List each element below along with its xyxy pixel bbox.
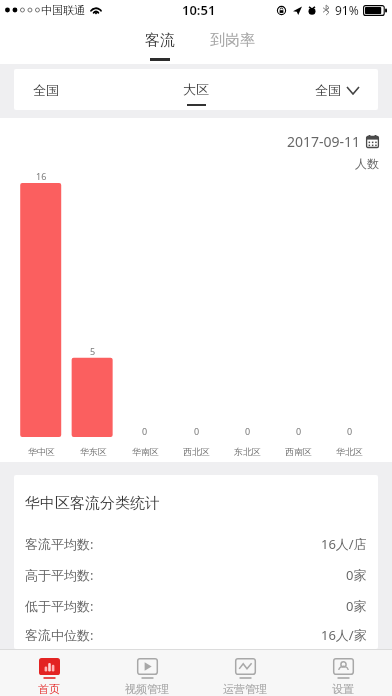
staticText: 西北区 [183, 446, 210, 457]
staticText: 首页 [38, 682, 60, 696]
staticText: 到岗率 [210, 31, 255, 50]
staticText: 5 [90, 345, 96, 357]
button[interactable]: 首页 [0, 651, 98, 696]
button[interactable]: 到岗率 [196, 20, 269, 64]
staticText: 人数 [355, 156, 379, 171]
staticText: 东北区 [234, 446, 261, 457]
staticText: 0家 [346, 566, 367, 584]
staticText: 0 [296, 425, 302, 437]
staticText: 华南区 [132, 446, 159, 457]
button[interactable]: 视频管理 [98, 651, 196, 696]
staticText: 低于平均数: [25, 597, 94, 615]
staticText: 大区 [183, 81, 209, 97]
button[interactable]: 运营管理 [196, 651, 294, 696]
staticText: 全国 [315, 82, 341, 98]
button[interactable]: 大区 [183, 81, 209, 106]
button[interactable]: 全国 [315, 82, 359, 98]
staticText: 10:51 [182, 1, 216, 19]
button[interactable]: 设置 [294, 651, 392, 696]
staticText: 华东区 [80, 446, 107, 457]
staticText: 0家 [346, 597, 367, 615]
other: Pick date [366, 135, 379, 148]
staticText: 0 [142, 425, 148, 437]
staticText: 0 [347, 425, 353, 437]
button[interactable]: 客流 [123, 20, 196, 64]
staticText: 客流平均数: [25, 535, 94, 553]
button[interactable]: 2017-09-11 [287, 132, 379, 151]
staticText: 0 [245, 425, 251, 437]
staticText: 0 [194, 425, 200, 437]
staticText: 16人/店 [321, 535, 367, 553]
staticText: 华中区 [28, 446, 55, 457]
staticText: 2017-09-11 [287, 132, 361, 151]
button[interactable]: 全国 [33, 82, 59, 98]
staticText: 客流中位数: [25, 626, 94, 644]
staticText: 16人/家 [321, 626, 367, 644]
staticText: 运营管理 [223, 682, 267, 696]
staticText: 设置 [332, 682, 354, 696]
staticText: 视频管理 [125, 682, 169, 696]
staticText: 西南区 [285, 446, 312, 457]
staticText: 华中区客流分类统计 [25, 494, 160, 513]
staticText: 高于平均数: [25, 566, 94, 584]
staticText: 华北区 [336, 446, 363, 457]
staticText: 16 [36, 170, 47, 182]
staticText: 91% [335, 2, 359, 18]
staticText: 中国联通 [41, 3, 85, 17]
staticText: 客流 [145, 31, 175, 50]
